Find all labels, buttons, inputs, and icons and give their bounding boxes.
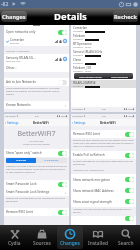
staticText: CHOOSE A NETWORK... — [6, 50, 31, 53]
staticText: -82 — [1, 1, 9, 8]
staticText: Show exact signal strength — [73, 200, 112, 204]
staticText: At the top — [16, 159, 27, 162]
staticText: Password: — [73, 38, 84, 41]
staticText: yahoo — [85, 46, 92, 49]
button[interactable]: Search — [113, 226, 139, 249]
staticText: Enable Pull to Refresh — [73, 153, 105, 157]
staticText: › — [65, 103, 67, 108]
staticText: Password: — [73, 30, 84, 33]
button[interactable]: Installed — [85, 226, 111, 249]
staticText: Simorsi IRLAN-5GHz — [73, 50, 103, 54]
button[interactable]: Changes — [1, 11, 27, 22]
staticText: NETWORK LIST INFORMATION — [73, 169, 105, 172]
staticText: To refresh the networks list, simply pul… — [73, 160, 134, 166]
staticText: Show network MAC Address — [73, 189, 114, 193]
staticText: Smart Passcode Lock Settings — [6, 190, 50, 194]
staticText: › — [65, 190, 67, 195]
staticText: ‹ — [72, 120, 74, 125]
staticText: Telekom_ICE — [73, 66, 92, 70]
staticText: wpa2/psk — [10, 42, 20, 45]
staticText: ▮ ▮ 100%▮ — [124, 108, 135, 111]
staticText: ▮ ▮ 100%▮ — [124, 115, 135, 118]
staticText: Comerlan — [73, 26, 88, 30]
staticText: 9:41 — [35, 115, 40, 118]
staticText: Smart Passcode Lock — [6, 182, 37, 186]
staticText: Ask to Join Networks — [6, 80, 36, 84]
staticText: by Simon Selg — [4, 140, 69, 143]
staticText: Known Networks — [6, 103, 31, 107]
staticText: Changes — [2, 13, 26, 20]
staticText: Telekom — [73, 34, 86, 38]
staticText: Password: — [73, 85, 84, 88]
staticText: IRLAN-2GWIFI# — [73, 81, 96, 85]
staticText: Recheck — [114, 13, 137, 20]
button[interactable]: Changes — [57, 226, 83, 249]
staticText: Known networks will be joined automatica… — [6, 87, 67, 96]
other: Cydia — [9, 228, 21, 240]
other: Search — [120, 228, 132, 240]
staticText: 9:41 — [102, 115, 107, 118]
staticText: Cleon — [73, 58, 82, 62]
staticText: BetterWiFi — [33, 121, 49, 125]
staticText: Password: — [73, 46, 84, 49]
other: Installed — [92, 228, 104, 240]
staticText: At the bottom — [44, 159, 59, 162]
staticText: wpa2 wifi 5 ghz — [6, 60, 21, 63]
staticText: Installed — [88, 240, 108, 247]
staticText: Sensoriy IRLAN-5G... — [6, 56, 36, 60]
staticText: Show network encryption — [73, 178, 111, 182]
staticText: Sources — [33, 240, 51, 247]
staticText: Other... — [6, 66, 17, 70]
staticText: Copy password — [111, 75, 129, 78]
staticText: Open networks only — [6, 30, 36, 34]
staticText: ‹ — [5, 120, 7, 125]
button[interactable]: At the top — [6, 158, 36, 163]
staticText: Password: — [73, 54, 84, 57]
staticText: ▮ ▮ 100%▮ — [57, 115, 68, 118]
button[interactable]: Sources — [29, 226, 55, 249]
staticText: 9:41 — [102, 108, 107, 111]
staticText: Remove RSSI Limit — [6, 210, 33, 214]
other: Changes — [64, 228, 76, 240]
staticText: Password: — [73, 70, 84, 73]
staticText: BetterWiFi — [100, 121, 116, 125]
staticText: BetterWiFi7 — [4, 129, 69, 139]
staticText: Password: — [73, 62, 84, 65]
staticText: Cydia — [8, 240, 21, 247]
staticText: Changes — [60, 240, 80, 247]
staticText: Details — [54, 10, 87, 23]
staticText: Settings — [74, 121, 86, 125]
staticText: BTOpenzone — [73, 42, 92, 46]
staticText: If enabled, you'll have a switch in the … — [6, 165, 67, 174]
staticText: Show "open only" switch — [6, 151, 42, 155]
button[interactable]: Cydia — [1, 226, 27, 249]
button[interactable]: At the bottom — [36, 158, 67, 163]
button[interactable]: Recheck — [113, 11, 138, 22]
staticText: No Service ⇅ — [5, 115, 19, 118]
staticText: Disables your Passcode when you are conn… — [6, 197, 67, 203]
staticText: yahoo — [85, 70, 92, 73]
staticText: Comerlan — [10, 38, 25, 42]
staticText: Settings — [7, 121, 19, 125]
staticText: No Service ⇅ — [72, 108, 86, 111]
staticText: No Service ⇅ — [72, 115, 86, 118]
staticText: Thank you for your support — [4, 143, 69, 146]
staticText: Copy network name — [79, 75, 102, 78]
staticText: Removes the signal strength limit for Wi… — [73, 139, 134, 148]
staticText: Remove RSSI Limit — [73, 132, 100, 136]
staticText: Search — [118, 240, 134, 247]
other: Sources — [36, 228, 48, 240]
staticText: If enabled, you'll see the exact signal … — [73, 208, 134, 214]
